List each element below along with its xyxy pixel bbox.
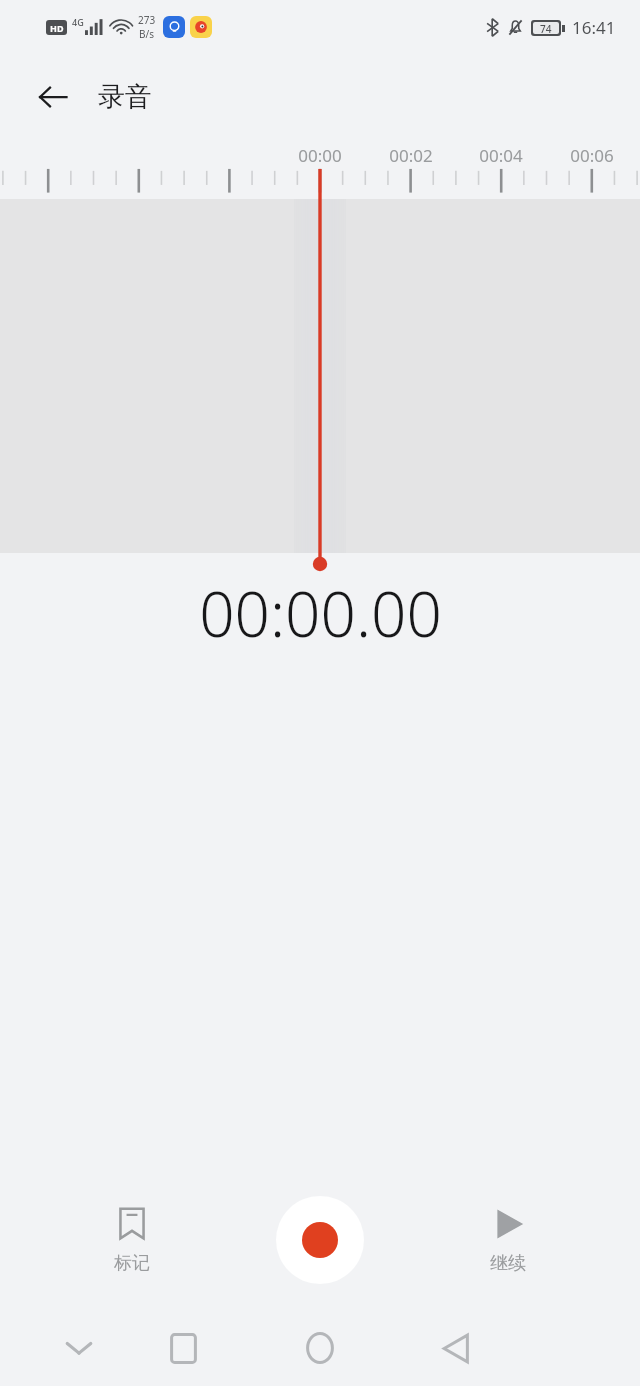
button[interactable]: Record bbox=[276, 1196, 364, 1284]
staticText: HD bbox=[50, 22, 64, 34]
staticText: 273 bbox=[138, 13, 156, 27]
staticText: 标记 bbox=[114, 1252, 150, 1275]
staticText: B/s bbox=[139, 27, 155, 41]
button[interactable]: Recents bbox=[148, 1313, 218, 1383]
button[interactable]: Home bbox=[285, 1313, 355, 1383]
staticText: 00:02 bbox=[376, 144, 446, 167]
staticText: 00:00.00 bbox=[199, 571, 442, 655]
staticText: 4G bbox=[72, 16, 84, 28]
staticText: 继续 bbox=[490, 1252, 526, 1275]
button[interactable]: 继续 bbox=[471, 1197, 545, 1283]
staticText: 录音 bbox=[98, 80, 152, 114]
button[interactable]: Back bbox=[420, 1313, 490, 1383]
button[interactable]: 标记 bbox=[96, 1197, 168, 1283]
staticText: 16:41 bbox=[572, 16, 616, 39]
staticText: 00:04 bbox=[466, 144, 536, 167]
button[interactable]: Hide keyboard bbox=[44, 1313, 114, 1383]
staticText: 00:06 bbox=[557, 144, 627, 167]
staticText: 74 bbox=[540, 22, 552, 34]
staticText: 00:00 bbox=[285, 144, 355, 167]
button[interactable]: Back bbox=[22, 66, 84, 128]
